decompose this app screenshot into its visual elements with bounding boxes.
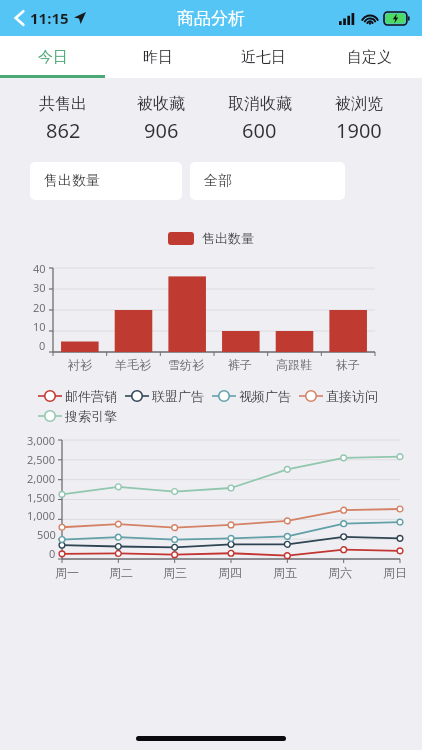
staticText: 今日: [38, 48, 68, 67]
staticText: 售出数量: [202, 230, 254, 246]
staticText: 0: [49, 546, 56, 561]
staticText: 10: [33, 319, 46, 334]
button[interactable]: Back: [10, 4, 90, 32]
staticText: 被收藏: [137, 94, 185, 114]
button[interactable]: 搜索引擎: [38, 408, 125, 424]
staticText: 羊毛衫: [115, 357, 151, 372]
button[interactable]: 全部: [190, 162, 345, 200]
staticText: 全部: [204, 172, 232, 190]
staticText: 周四: [218, 565, 242, 580]
staticText: 共售出: [39, 94, 87, 114]
staticText: 售出数量: [44, 172, 100, 190]
staticText: 3,000: [27, 433, 56, 448]
staticText: 0: [39, 338, 46, 353]
staticText: 取消收藏: [228, 94, 292, 114]
button[interactable]: 售出数量: [30, 162, 182, 200]
staticText: 昨日: [143, 48, 173, 67]
staticText: 11:15: [30, 8, 69, 28]
staticText: 2,000: [27, 471, 56, 486]
staticText: 搜索引擎: [65, 408, 117, 424]
staticText: 1,000: [27, 508, 56, 523]
staticText: 500: [37, 527, 56, 542]
staticText: 周二: [109, 565, 133, 580]
staticText: 邮件营销: [65, 388, 117, 404]
staticText: 40: [33, 261, 46, 276]
staticText: 1900: [336, 117, 382, 144]
staticText: 862: [46, 117, 81, 144]
staticText: 周五: [273, 565, 297, 580]
staticText: 30: [33, 280, 46, 295]
button[interactable]: 邮件营销: [38, 388, 125, 404]
button[interactable]: 昨日: [105, 36, 210, 78]
staticText: 2,500: [27, 452, 56, 467]
staticText: 1,500: [27, 490, 56, 505]
staticText: 周三: [163, 565, 187, 580]
staticText: 自定义: [347, 48, 392, 67]
staticText: 近七日: [241, 48, 286, 67]
staticText: 雪纺衫: [168, 357, 204, 372]
staticText: 袜子: [336, 357, 360, 372]
staticText: 周日: [383, 565, 407, 580]
staticText: 直接访问: [326, 388, 378, 404]
staticText: 周一: [55, 565, 79, 580]
button[interactable]: 今日: [0, 36, 105, 78]
staticText: 视频广告: [239, 388, 291, 404]
staticText: 被浏览: [335, 94, 383, 114]
staticText: 衬衫: [68, 357, 92, 372]
button[interactable]: 近七日: [210, 36, 316, 78]
button[interactable]: 直接访问: [299, 388, 386, 404]
button[interactable]: 联盟广告: [125, 388, 212, 404]
staticText: 联盟广告: [152, 388, 204, 404]
staticText: 906: [144, 117, 179, 144]
staticText: 裤子: [228, 357, 252, 372]
staticText: 商品分析: [177, 8, 245, 29]
staticText: 周六: [328, 565, 352, 580]
staticText: 20: [33, 300, 46, 315]
button[interactable]: 视频广告: [212, 388, 299, 404]
staticText: 600: [242, 117, 277, 144]
button[interactable]: 自定义: [316, 36, 422, 78]
staticText: 高跟鞋: [276, 357, 312, 372]
